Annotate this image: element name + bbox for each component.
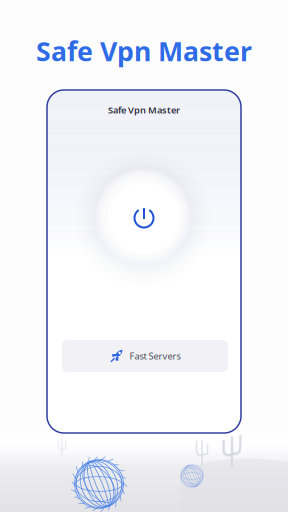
button[interactable]: Connect xyxy=(100,174,188,262)
staticText: Safe Vpn Master xyxy=(36,33,252,69)
staticText: Fast Servers xyxy=(129,350,180,362)
button[interactable]: Fast Servers xyxy=(62,340,228,372)
staticText: Safe Vpn Master xyxy=(108,104,180,116)
